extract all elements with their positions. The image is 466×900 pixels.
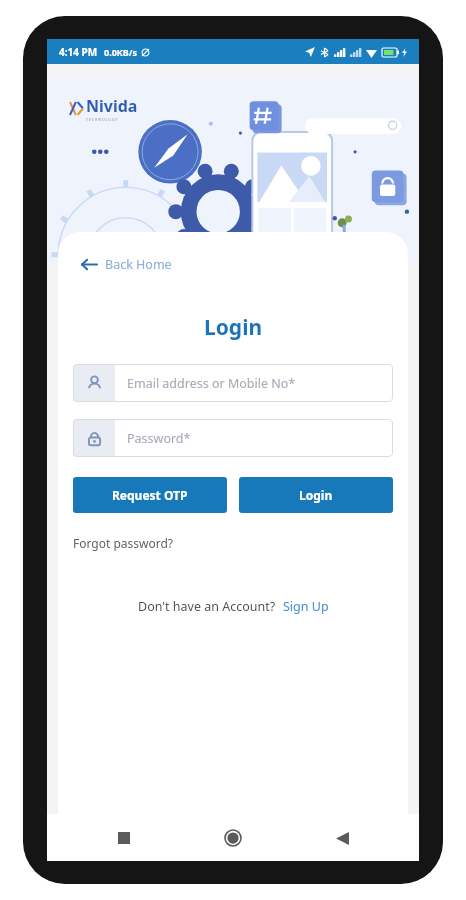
staticText: T E C H N O L O G Y bbox=[86, 117, 118, 122]
staticText: Forgot password? bbox=[73, 535, 174, 551]
staticText: Don't have an Account? bbox=[138, 598, 276, 615]
staticText: Email address or Mobile No* bbox=[127, 375, 296, 392]
button[interactable]: Back bbox=[74, 252, 178, 277]
staticText: 0.0KB/s bbox=[104, 46, 138, 58]
button[interactable]: Email address or Mobile No* bbox=[73, 364, 393, 402]
button[interactable]: Back bbox=[325, 821, 359, 855]
button[interactable]: Request OTP bbox=[73, 477, 227, 513]
button[interactable]: Home bbox=[216, 821, 250, 855]
staticText: Back Home bbox=[105, 256, 172, 273]
button[interactable]: Forgot password? bbox=[73, 533, 174, 553]
staticText: 4:14 PM bbox=[59, 45, 98, 59]
staticText: Login bbox=[299, 487, 333, 503]
button[interactable]: Sign Up bbox=[283, 598, 329, 615]
button[interactable]: Login bbox=[239, 477, 393, 513]
staticText: Request OTP bbox=[112, 487, 188, 503]
staticText: Password* bbox=[127, 430, 191, 447]
other: Back bbox=[80, 256, 97, 273]
staticText: Sign Up bbox=[283, 598, 329, 615]
button[interactable]: Recents bbox=[107, 821, 141, 855]
staticText: Login bbox=[204, 313, 263, 342]
staticText: Nivida bbox=[86, 95, 138, 117]
button[interactable]: Password* bbox=[73, 419, 393, 457]
